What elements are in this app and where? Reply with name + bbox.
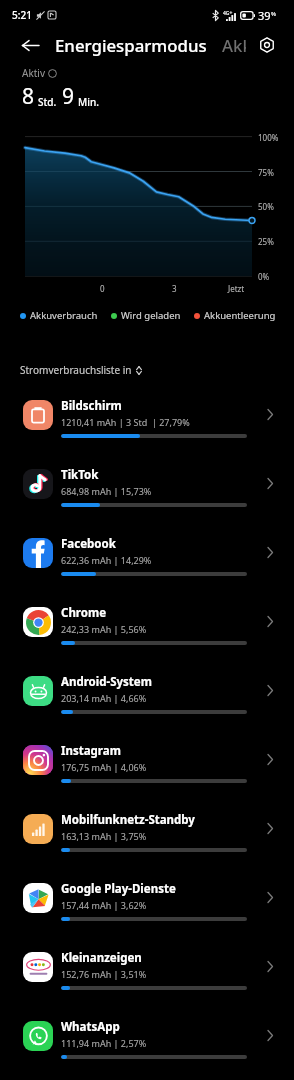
staticText: 9: [62, 82, 75, 111]
staticText: 8: [22, 82, 35, 111]
staticText: 622,36 mAh | 14,29%: [61, 554, 152, 566]
button[interactable]: Energiesparmodus: [51, 26, 211, 65]
button[interactable]: Settings: [254, 32, 279, 57]
button[interactable]: Android-System: [0, 656, 294, 725]
button[interactable]: Mobilfunknetz-Standby: [0, 794, 294, 863]
staticText: %: [271, 10, 276, 18]
staticText: Akkuentleerung: [204, 309, 276, 322]
staticText: 39: [258, 8, 271, 23]
staticText: Min.: [78, 95, 99, 109]
staticText: Aktiv: [22, 66, 45, 80]
staticText: Bildschirm: [61, 398, 122, 414]
button[interactable]: Kleinanzeigen: [0, 932, 294, 1001]
staticText: 203,14 mAh | 4,66%: [61, 692, 147, 704]
staticText: Android-System: [61, 674, 152, 690]
button[interactable]: TikTok: [0, 449, 294, 518]
staticText: Facebook: [61, 536, 116, 552]
button[interactable]: Back: [17, 32, 43, 58]
button[interactable]: Instagram: [0, 725, 294, 794]
staticText: Wird geladen: [121, 309, 181, 322]
staticText: 3: [172, 283, 177, 294]
staticText: Instagram: [61, 743, 121, 759]
staticText: 157,44 mAh | 3,62%: [61, 899, 147, 911]
staticText: TikTok: [61, 467, 99, 483]
staticText: 163,13 mAh | 3,75%: [61, 830, 147, 842]
staticText: Std.: [38, 95, 57, 109]
staticText: 1210,41 mAh | 3 Std | 27,79%: [61, 416, 190, 428]
button[interactable]: WhatsApp: [0, 1001, 294, 1070]
staticText: 50%: [258, 201, 274, 212]
staticText: 75%: [258, 167, 274, 178]
staticText: Akku: [222, 34, 246, 57]
staticText: Google Play-Dienste: [61, 881, 176, 897]
staticText: Mobilfunknetz-Standby: [61, 812, 195, 828]
staticText: Kleinanzeigen: [61, 950, 142, 966]
staticText: 176,75 mAh | 4,06%: [61, 761, 147, 773]
staticText: Stromverbrauchsliste in: [20, 363, 132, 377]
staticText: WhatsApp: [61, 1019, 120, 1035]
button[interactable]: Chrome: [0, 587, 294, 656]
staticText: 111,94 mAh | 2,57%: [61, 1037, 147, 1049]
staticText: 684,98 mAh | 15,73%: [61, 485, 152, 497]
button[interactable]: Stromverbrauchsliste in: [20, 363, 142, 377]
staticText: 0: [100, 283, 105, 294]
button[interactable]: Google Play-Dienste: [0, 863, 294, 932]
button[interactable]: Akku: [218, 26, 250, 65]
staticText: 152,76 mAh | 3,51%: [61, 968, 147, 980]
staticText: Akkuverbrauch: [30, 309, 98, 322]
staticText: Energiesparmodus: [55, 34, 207, 57]
staticText: 242,33 mAh | 5,56%: [61, 623, 147, 635]
button[interactable]: Bildschirm: [0, 380, 294, 449]
staticText: 25%: [258, 236, 274, 247]
staticText: Jetzt: [228, 283, 245, 294]
staticText: 4G+: [223, 10, 233, 17]
button[interactable]: Facebook: [0, 518, 294, 587]
staticText: Chrome: [61, 605, 107, 621]
staticText: 5:21: [12, 8, 32, 22]
staticText: 100%: [258, 132, 279, 143]
staticText: 0%: [258, 271, 270, 282]
